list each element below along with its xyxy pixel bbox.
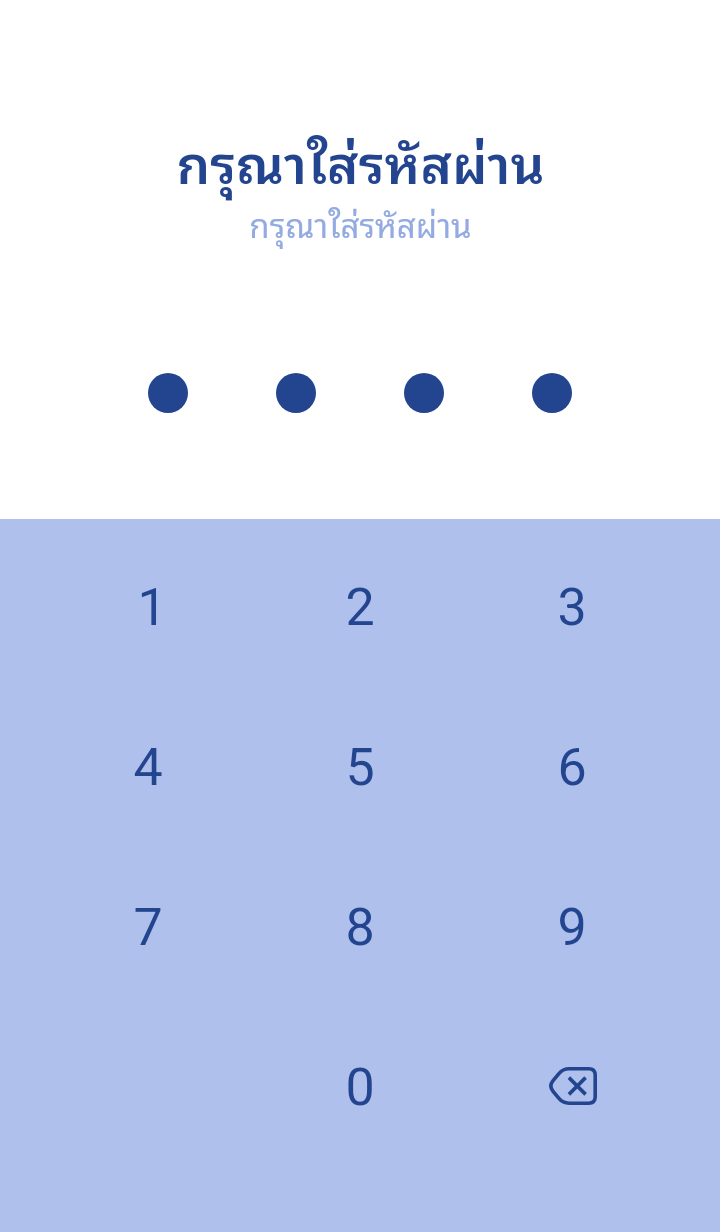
button[interactable]: 7 bbox=[42, 847, 254, 1007]
other: Delete bbox=[547, 1067, 597, 1105]
staticText: 4 bbox=[133, 737, 163, 798]
button[interactable]: 3 bbox=[466, 527, 678, 687]
button[interactable]: Delete bbox=[466, 1007, 678, 1167]
staticText: 2 bbox=[345, 577, 375, 638]
staticText: 5 bbox=[345, 737, 375, 798]
staticText: 3 bbox=[557, 577, 587, 638]
staticText: 9 bbox=[557, 897, 587, 958]
button[interactable]: 1 bbox=[42, 527, 254, 687]
button[interactable]: 9 bbox=[466, 847, 678, 1007]
staticText: 0 bbox=[345, 1057, 375, 1118]
button[interactable]: 5 bbox=[254, 687, 466, 847]
button[interactable]: 6 bbox=[466, 687, 678, 847]
button[interactable]: 4 bbox=[42, 687, 254, 847]
staticText: 8 bbox=[345, 897, 375, 958]
button[interactable]: 8 bbox=[254, 847, 466, 1007]
staticText: 7 bbox=[133, 897, 163, 958]
button[interactable]: 0 bbox=[254, 1007, 466, 1167]
staticText: 6 bbox=[557, 737, 587, 798]
staticText: กรุณาใส่รหัสผ่าน bbox=[176, 118, 545, 203]
button[interactable]: 2 bbox=[254, 527, 466, 687]
staticText: กรุณาใส่รหัสผ่าน bbox=[249, 197, 472, 250]
staticText: 1 bbox=[137, 577, 167, 638]
